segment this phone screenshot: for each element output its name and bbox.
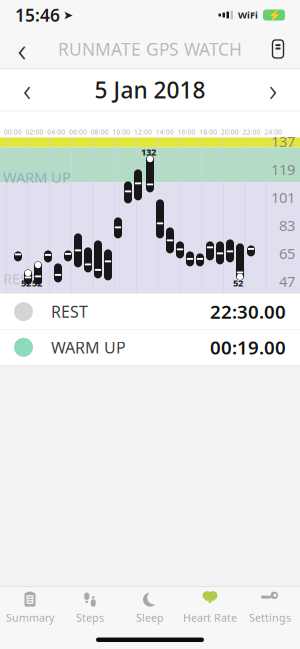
staticText: 101 [271,188,295,207]
staticText: 15:46 [15,3,60,27]
button[interactable]: Next day [246,69,300,111]
staticText: 52 [21,276,31,289]
staticText: WARM UP [51,337,126,358]
staticText: REST [3,269,36,288]
staticText: Settings [249,611,291,625]
staticText: 119 [271,160,295,179]
staticText: REST [51,301,88,322]
staticText: 10:00 [112,127,130,136]
staticText: 24:00 [264,127,282,136]
staticText: 137 [271,132,295,151]
button[interactable]: Sleep [120,587,180,629]
button[interactable]: Settings [240,587,300,629]
staticText: WiFi [238,9,258,21]
staticText: Heart Rate [183,611,237,625]
staticText: 18:00 [199,127,217,136]
staticText: 22:00 [242,127,260,136]
staticText: 52 [32,276,42,289]
button[interactable]: Heart Rate [180,587,240,629]
staticText: 06:00 [69,127,87,136]
staticText: 00:19.00 [210,335,286,360]
staticText: ➤ [63,8,73,22]
staticText: › [269,69,277,111]
staticText: 16:00 [177,127,195,136]
staticText: Sleep [136,611,164,625]
staticText: ‹ [23,69,31,111]
staticText: 08:00 [91,127,109,136]
staticText: WARM UP [3,167,71,187]
staticText: 5 Jan 2018 [94,74,205,105]
staticText: 14:00 [156,127,174,136]
button[interactable]: Watch battery [256,30,300,68]
staticText: 52 [233,276,243,289]
staticText: 02:00 [25,127,43,136]
staticText: RUNMATE GPS WATCH [58,37,242,60]
staticText: 12:00 [134,127,152,136]
button[interactable]: Summary [0,587,60,629]
staticText: ⚡ [267,9,280,21]
staticText: 04:00 [47,127,65,136]
staticText: 83 [279,216,295,235]
staticText: 22:30.00 [210,299,286,324]
button[interactable]: WARM UP [0,330,300,365]
staticText: 47 [279,272,295,291]
staticText: Steps [76,611,104,625]
button[interactable]: Previous day [0,69,54,111]
staticText: 132 [141,145,156,158]
staticText: Summary [6,611,54,625]
button[interactable]: REST [0,294,300,329]
staticText: 20:00 [221,127,239,136]
button[interactable]: Steps [60,587,120,629]
staticText: ‹ [17,26,26,72]
button[interactable]: Back [0,30,44,68]
staticText: 00:00 [4,127,22,136]
staticText: 65 [279,244,295,263]
